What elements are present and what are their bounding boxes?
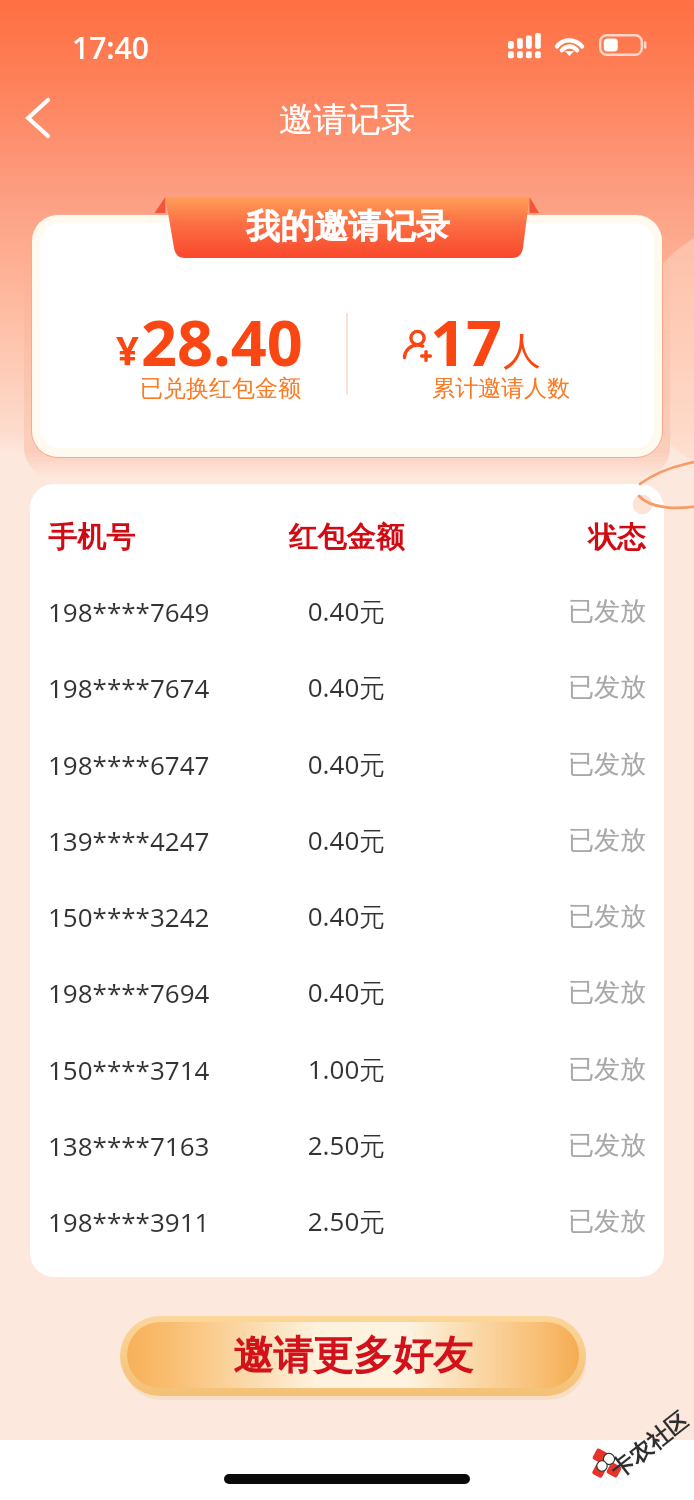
button[interactable]: 邀请更多好友 (120, 1316, 586, 1396)
staticText: 28.40 (141, 299, 303, 385)
staticText: 150****3242 (48, 899, 243, 934)
staticText: 红包金额 (243, 519, 450, 556)
staticText: 0.40元 (243, 746, 450, 782)
staticText: 198****7694 (48, 975, 243, 1010)
staticText: 已发放 (450, 1053, 646, 1086)
staticText: 已发放 (450, 748, 646, 781)
staticText: 人 (503, 327, 541, 375)
staticText: 139****4247 (48, 823, 243, 858)
staticText: 手机号 (48, 519, 243, 556)
button[interactable]: 150****3714 (30, 1031, 664, 1107)
staticText: 198****7649 (48, 594, 243, 629)
staticText: 138****7163 (48, 1128, 243, 1163)
staticText: 卡农社区 (605, 1406, 693, 1485)
button[interactable]: 198****7694 (30, 954, 664, 1030)
staticText: 198****3911 (48, 1204, 243, 1239)
staticText: 198****7674 (48, 670, 243, 705)
staticText: 0.40元 (243, 822, 450, 858)
staticText: 累计邀请人数 (432, 374, 570, 403)
staticText: 已发放 (450, 976, 646, 1009)
staticText: 已发放 (450, 1205, 646, 1238)
button[interactable]: 139****4247 (30, 802, 664, 878)
button[interactable]: 150****3242 (30, 878, 664, 954)
staticText: 198****6747 (48, 747, 243, 782)
staticText: 2.50元 (243, 1127, 450, 1163)
staticText: 已兑换红包金额 (140, 374, 301, 403)
staticText: 状态 (450, 519, 646, 556)
staticText: 已发放 (450, 900, 646, 933)
staticText: 1.00元 (243, 1051, 450, 1087)
staticText: 邀请更多好友 (233, 1330, 473, 1380)
staticText: 0.40元 (243, 593, 450, 629)
button[interactable]: 198****3911 (30, 1183, 664, 1259)
staticText: 0.40元 (243, 898, 450, 934)
button[interactable]: Back (6, 84, 72, 150)
staticText: 17 (430, 299, 503, 385)
staticText: 已发放 (450, 824, 646, 857)
staticText: 已发放 (450, 671, 646, 704)
staticText: 已发放 (450, 595, 646, 628)
staticText: 我的邀请记录 (246, 205, 450, 248)
button[interactable]: 198****7674 (30, 649, 664, 725)
button[interactable]: 198****6747 (30, 726, 664, 802)
button[interactable]: 138****7163 (30, 1107, 664, 1183)
staticText: ¥ (116, 322, 139, 376)
staticText: 邀请记录 (279, 98, 415, 141)
staticText: 已发放 (450, 1129, 646, 1162)
button[interactable]: 198****7649 (30, 573, 664, 649)
staticText: 0.40元 (243, 974, 450, 1010)
staticText: 0.40元 (243, 669, 450, 705)
staticText: 150****3714 (48, 1052, 243, 1087)
staticText: 17:40 (72, 27, 149, 68)
staticText: 2.50元 (243, 1203, 450, 1239)
